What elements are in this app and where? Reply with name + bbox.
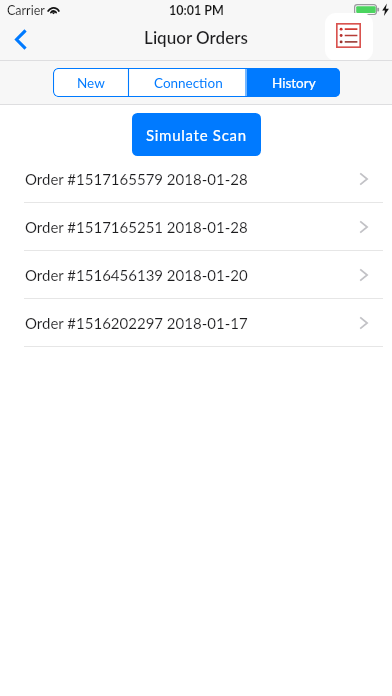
button[interactable]: Orders list — [325, 13, 373, 61]
staticText: Simulate Scan — [146, 126, 247, 144]
staticText: 10:01 PM — [169, 3, 224, 18]
button[interactable]: Order #1516456139 2018-01-20 — [0, 251, 392, 299]
staticText: New — [77, 75, 105, 91]
staticText: Carrier — [7, 3, 45, 18]
staticText: Order #1516202297 2018-01-17 — [25, 314, 248, 332]
staticText: Order #1517165251 2018-01-28 — [25, 218, 248, 236]
button[interactable]: Simulate Scan — [132, 113, 261, 156]
button[interactable]: Connection — [129, 68, 247, 97]
button[interactable]: History — [247, 68, 340, 97]
button[interactable]: New — [53, 68, 129, 97]
button[interactable]: Order #1516202297 2018-01-17 — [0, 299, 392, 347]
staticText: Order #1516456139 2018-01-20 — [25, 266, 248, 284]
button[interactable]: Back — [0, 20, 42, 60]
staticText: Order #1517165579 2018-01-28 — [25, 170, 248, 188]
staticText: Liquor Orders — [144, 27, 248, 47]
button[interactable]: Order #1517165579 2018-01-28 — [0, 155, 392, 203]
button[interactable]: Order #1517165251 2018-01-28 — [0, 203, 392, 251]
staticText: Connection — [154, 75, 223, 91]
staticText: History — [272, 75, 316, 91]
